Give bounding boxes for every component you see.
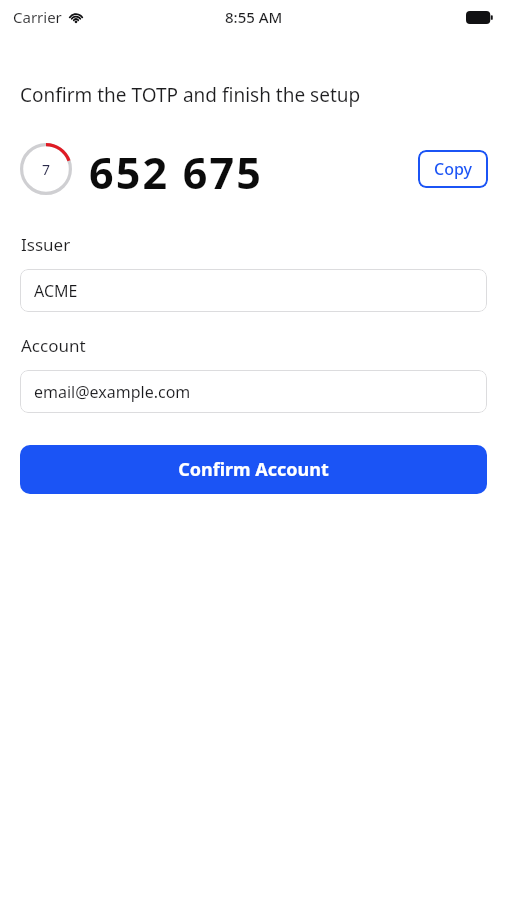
staticText: ACME <box>34 280 78 302</box>
staticText: Copy <box>434 158 472 180</box>
button[interactable]: email@example.com <box>20 370 487 413</box>
staticText: email@example.com <box>34 381 191 403</box>
staticText: 652 675 <box>89 143 264 195</box>
staticText: 8:55 AM <box>225 7 283 27</box>
button[interactable]: Confirm Account <box>20 445 487 494</box>
button[interactable]: Copy <box>418 150 488 188</box>
staticText: Confirm Account <box>178 457 329 482</box>
staticText: Carrier <box>13 7 62 27</box>
staticText: Confirm the TOTP and finish the setup <box>20 82 361 108</box>
button[interactable]: ACME <box>20 269 487 312</box>
staticText: 7 <box>42 160 51 179</box>
staticText: Issuer <box>21 233 71 256</box>
staticText: Account <box>21 334 86 357</box>
